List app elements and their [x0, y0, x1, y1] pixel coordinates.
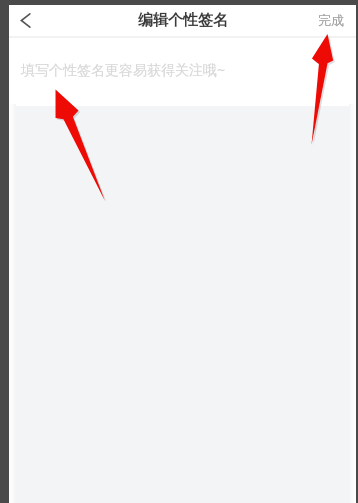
button[interactable]: 填写个性签名更容易获得关注哦~ [9, 38, 356, 106]
staticText: 填写个性签名更容易获得关注哦~ [21, 60, 226, 79]
staticText: 完成 [318, 12, 344, 28]
button[interactable]: 完成 [308, 7, 356, 35]
staticText: 编辑个性签名 [138, 11, 228, 30]
button[interactable]: Back [9, 5, 42, 36]
